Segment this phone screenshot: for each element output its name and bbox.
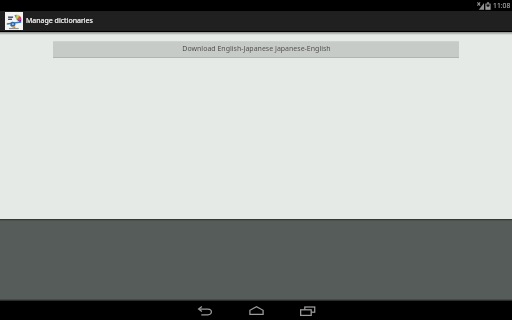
button[interactable]: Home bbox=[241, 301, 271, 320]
staticText: 11:08 bbox=[493, 1, 511, 10]
button[interactable]: Back bbox=[190, 301, 220, 320]
staticText: Download English-Japanese Japanese-Engli… bbox=[182, 44, 331, 54]
button[interactable]: Recents bbox=[293, 301, 323, 320]
button[interactable]: Download English-Japanese Japanese-Engli… bbox=[53, 41, 459, 58]
staticText: Manage dictionaries bbox=[26, 16, 93, 26]
